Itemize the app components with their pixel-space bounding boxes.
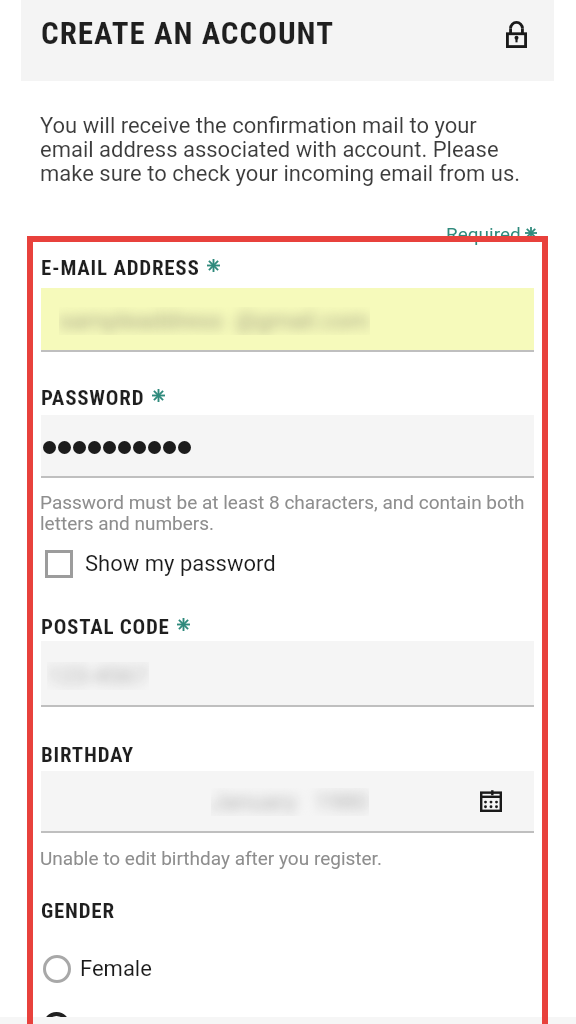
staticText: POSTAL CODE [41,615,170,640]
staticText: Unable to edit birthday after you regist… [40,847,382,869]
staticText: Password must be at least 8 characters, … [40,491,525,535]
staticText: GENDER [41,899,115,924]
staticText: E-MAIL ADDRESS [41,256,200,281]
button[interactable]: Pick date [469,779,513,823]
staticText: Show my password [85,551,276,577]
button[interactable]: Male [43,1012,70,1024]
staticText: CREATE AN ACCOUNT [41,15,335,51]
staticText: sampleaddress @gmail.com [59,307,370,335]
staticText: 123-4567 [47,662,149,690]
button[interactable]: Show my password [40,546,276,582]
button[interactable]: Secure [489,7,543,61]
staticText: January 1980 [211,788,369,816]
button[interactable]: Female [40,950,152,988]
button[interactable]: Required [446,223,537,245]
staticText: BIRTHDAY [41,743,134,768]
staticText: Female [80,956,152,982]
staticText: You will receive the confirmation mail t… [40,113,521,187]
staticText: Required [446,223,521,245]
staticText: PASSWORD [41,386,145,411]
